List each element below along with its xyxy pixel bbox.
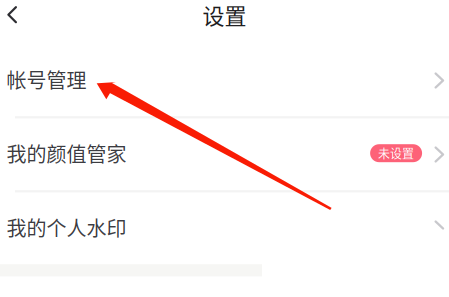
- staticText: 帐号管理: [6, 65, 86, 94]
- button[interactable]: 我的颜值管家: [0, 116, 449, 190]
- button[interactable]: Back: [0, 0, 31, 29]
- button[interactable]: 帐号管理: [0, 42, 449, 116]
- staticText: 我的颜值管家: [6, 139, 126, 168]
- button[interactable]: 我的个人水印: [0, 190, 449, 264]
- staticText: 设置: [202, 0, 246, 31]
- staticText: 未设置: [378, 144, 414, 162]
- staticText: 我的个人水印: [6, 213, 126, 242]
